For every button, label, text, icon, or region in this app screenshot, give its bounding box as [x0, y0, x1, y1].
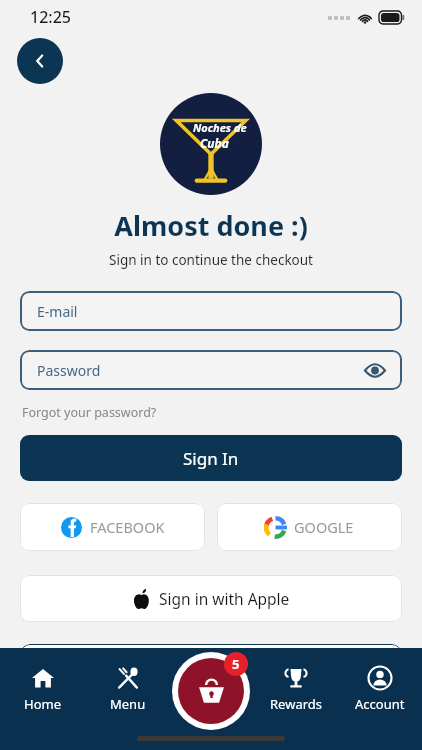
staticText: 12:25: [30, 6, 71, 28]
button[interactable]: Home: [0, 648, 85, 728]
staticText: Password: [37, 361, 101, 380]
staticText: Cuba: [200, 135, 229, 151]
staticText: 5: [232, 655, 240, 673]
staticText: Sign in with Apple: [159, 588, 290, 609]
button[interactable]: Password: [20, 350, 402, 390]
button[interactable]: Show password: [362, 357, 388, 383]
staticText: Account: [355, 695, 405, 713]
button[interactable]: Cart: [172, 652, 250, 730]
staticText: Rewards: [270, 695, 323, 713]
button[interactable]: E-mail: [20, 291, 402, 331]
staticText: Sign In: [183, 447, 239, 470]
button[interactable]: GOOGLE: [217, 503, 402, 551]
staticText: E-mail: [37, 302, 78, 321]
staticText: FACEBOOK: [90, 517, 165, 537]
staticText: Sign in to continue the checkout: [0, 251, 422, 269]
button[interactable]: Sign in with Apple: [20, 575, 402, 622]
button[interactable]: FACEBOOK: [20, 503, 205, 551]
button[interactable]: [20, 644, 402, 692]
button[interactable]: Account: [338, 648, 422, 728]
staticText: GOOGLE: [294, 517, 354, 537]
button[interactable]: Forgot your password?: [22, 402, 157, 423]
staticText: Home: [24, 695, 61, 713]
staticText: Noches de: [193, 120, 247, 135]
button[interactable]: Menu: [85, 648, 170, 728]
staticText: Menu: [110, 695, 146, 713]
button[interactable]: Sign In: [20, 435, 402, 481]
staticText: Almost done :): [0, 207, 422, 244]
button[interactable]: Back: [17, 38, 63, 84]
button[interactable]: Rewards: [254, 648, 338, 728]
